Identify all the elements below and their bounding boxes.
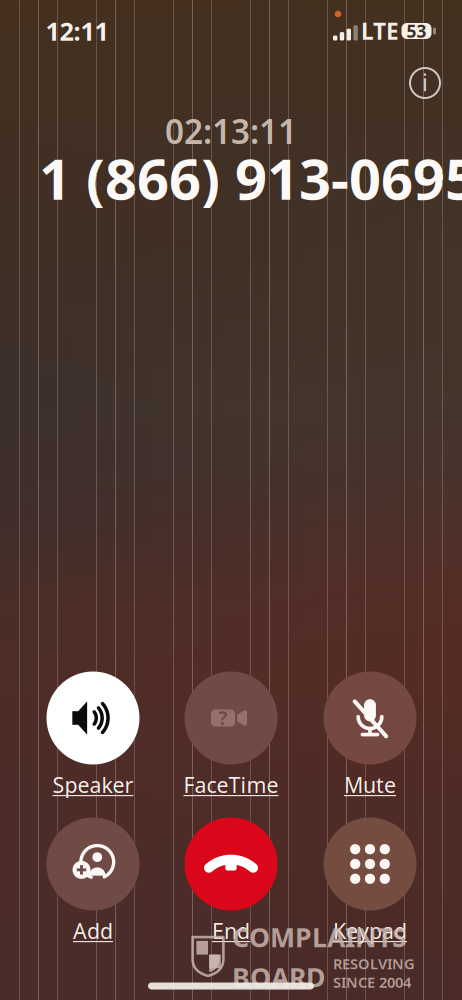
staticText: 12:11: [45, 14, 108, 48]
staticText: RESOLVING: [333, 954, 415, 973]
staticText: 53: [406, 19, 426, 42]
staticText: Keypad: [333, 916, 407, 945]
staticText: i: [422, 67, 428, 97]
button[interactable]: ?: [162, 671, 300, 805]
staticText: 1 (866) 913-0695: [39, 141, 462, 215]
staticText: LTE: [361, 16, 399, 46]
staticText: FaceTime: [183, 770, 278, 799]
staticText: End: [212, 916, 250, 945]
staticText: COMPLAINTS: [232, 919, 407, 955]
staticText: BOARD: [232, 959, 326, 995]
staticText: SINCE 2004: [333, 972, 411, 992]
staticText: Add: [73, 916, 113, 945]
staticText: ?: [218, 706, 227, 730]
button[interactable]: Keypad: [301, 817, 439, 951]
button[interactable]: Mute: [301, 671, 439, 805]
button[interactable]: Add: [24, 817, 162, 951]
button[interactable]: Call details: [403, 61, 447, 105]
button[interactable]: Speaker: [24, 671, 162, 805]
button[interactable]: End: [162, 817, 300, 951]
staticText: 02:13:11: [165, 109, 297, 153]
staticText: Speaker: [52, 770, 133, 799]
staticText: Mute: [344, 770, 396, 799]
